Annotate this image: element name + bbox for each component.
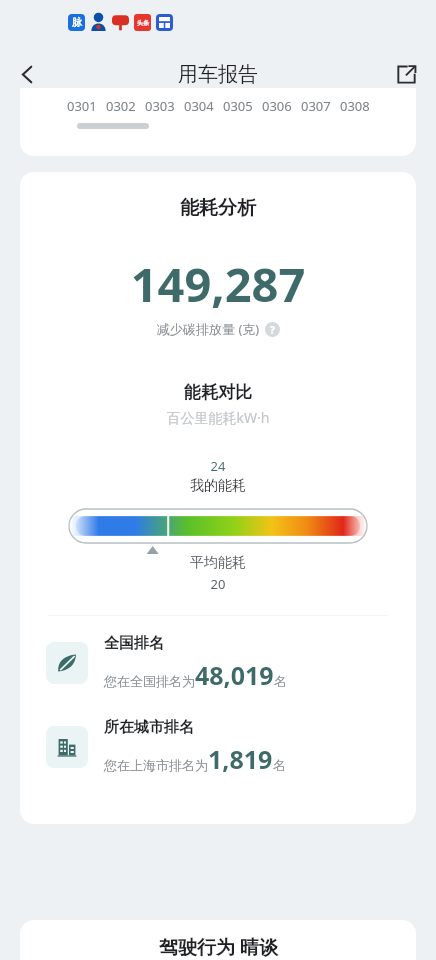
staticText: 名 (273, 757, 286, 773)
staticText: 用车报告 (178, 62, 258, 87)
button[interactable]: Help (265, 322, 280, 337)
staticText: 0308 (340, 97, 370, 115)
staticText: 平均能耗 (20, 554, 416, 572)
staticText: 0304 (184, 97, 214, 115)
button[interactable]: Back (6, 53, 48, 95)
staticText: 百公里能耗kW·h (20, 408, 416, 427)
staticText: 24 (20, 457, 416, 475)
staticText: 减少碳排放量 (克) (157, 320, 260, 338)
staticText: 您在全国排名为 (104, 673, 195, 689)
staticText: 0301 (67, 97, 97, 115)
staticText: 驾驶行为 晴谈 (159, 934, 278, 960)
button[interactable]: 所在城市排名 (20, 718, 416, 776)
staticText: 全国排名 (104, 634, 164, 653)
staticText: ? (270, 323, 275, 337)
staticText: 0307 (301, 97, 331, 115)
staticText: 0306 (262, 97, 292, 115)
staticText: 头条 (137, 19, 149, 27)
button[interactable]: 全国排名 (20, 634, 416, 692)
staticText: 149,287 (20, 252, 416, 316)
staticText: 0303 (145, 97, 175, 115)
staticText: 脉 (72, 16, 82, 29)
button[interactable]: Share (386, 54, 426, 94)
staticText: 您在上海市排名为 (104, 757, 208, 773)
staticText: 所在城市排名 (104, 718, 194, 737)
staticText: 能耗对比 (20, 382, 416, 403)
staticText: 我的能耗 (20, 477, 416, 495)
staticText: 48,019 (195, 658, 274, 692)
staticText: 名 (274, 673, 287, 689)
staticText: 20 (20, 575, 416, 593)
staticText: 1,819 (208, 742, 273, 776)
staticText: 0302 (106, 97, 136, 115)
staticText: 0305 (223, 97, 253, 115)
staticText: 能耗分析 (20, 196, 416, 220)
